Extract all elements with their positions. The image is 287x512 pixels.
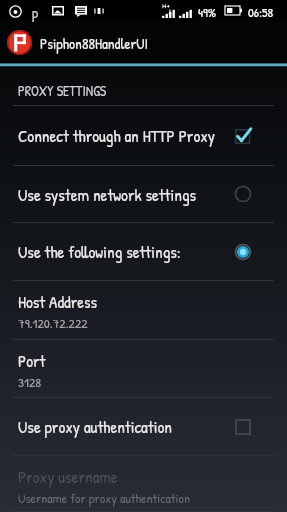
staticText: p — [32, 3, 38, 22]
staticText: Use system network settings — [18, 183, 234, 206]
button[interactable]: Host Address — [0, 281, 287, 340]
other: Psiphon — [7, 30, 32, 55]
button[interactable]: Use the following settings: — [0, 223, 287, 281]
staticText: 79.120.72.222 — [18, 314, 88, 332]
button[interactable]: Connect through an HTTP Proxy — [0, 106, 287, 166]
staticText: 06:58 — [248, 3, 274, 21]
staticText: Username for proxy authentication — [18, 489, 191, 507]
staticText: Proxy username — [18, 465, 118, 488]
staticText: Use the following settings: — [18, 240, 234, 263]
staticText: Host Address — [18, 290, 98, 313]
staticText: Port — [18, 349, 46, 372]
staticText: 3128 — [18, 373, 42, 391]
staticText: Use proxy authentication — [18, 415, 234, 438]
staticText: Psiphon88HandlerUI — [40, 33, 148, 53]
staticText: Connect through an HTTP Proxy — [18, 124, 234, 147]
button[interactable]: Proxy username — [0, 456, 287, 512]
staticText: 49% — [198, 3, 217, 21]
staticText: PROXY SETTINGS — [18, 81, 107, 100]
button[interactable]: Use system network settings — [0, 166, 287, 223]
button[interactable]: Use proxy authentication — [0, 398, 287, 456]
button[interactable]: Port — [0, 340, 287, 398]
